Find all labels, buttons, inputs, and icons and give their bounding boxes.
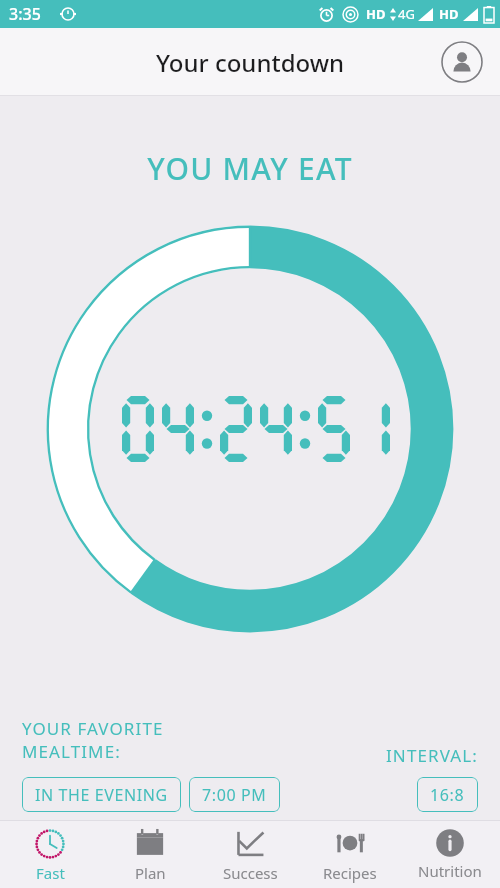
button[interactable]: 7:00 PM <box>189 777 280 812</box>
staticText: Success <box>223 863 278 883</box>
button[interactable]: Plan <box>100 821 200 888</box>
button[interactable]: 16:8 <box>417 777 478 812</box>
staticText: 4G <box>398 5 415 23</box>
button[interactable]: Profile <box>440 40 484 84</box>
staticText: 7:00 PM <box>202 784 267 806</box>
staticText: YOU MAY EAT <box>147 148 353 189</box>
staticText: HD <box>439 5 459 23</box>
staticText: 3:35 <box>9 3 41 25</box>
staticText: Recipes <box>323 863 377 883</box>
staticText: Plan <box>135 863 166 883</box>
button[interactable]: Fast <box>0 821 100 888</box>
staticText: Nutrition <box>418 861 482 881</box>
staticText: IN THE EVENING <box>35 784 168 806</box>
button[interactable]: Recipes <box>300 821 400 888</box>
staticText: MEALTIME: <box>22 740 121 763</box>
staticText: Your countdown <box>156 46 345 79</box>
staticText: YOUR FAVORITE <box>22 717 164 740</box>
button[interactable]: Nutrition <box>400 821 500 888</box>
staticText: Fast <box>36 863 65 883</box>
staticText: INTERVAL: <box>386 744 478 767</box>
staticText: 16:8 <box>430 784 465 806</box>
staticText: HD <box>366 5 386 23</box>
button[interactable]: IN THE EVENING <box>22 777 181 812</box>
button[interactable]: Success <box>200 821 300 888</box>
